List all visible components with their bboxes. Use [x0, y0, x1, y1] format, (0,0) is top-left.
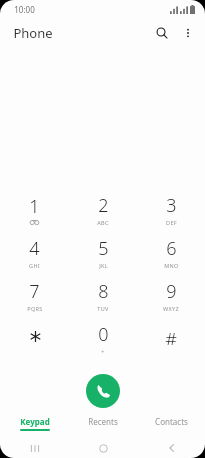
button[interactable]: Contacts	[137, 408, 205, 438]
staticText: 5	[98, 236, 109, 261]
staticText: 10:00	[14, 4, 35, 15]
staticText: Recents	[88, 416, 118, 427]
staticText: 0	[98, 322, 109, 347]
staticText: Phone	[13, 24, 53, 42]
staticText: PQRS	[27, 305, 43, 312]
button[interactable]: Search	[149, 20, 175, 46]
staticText: 6	[166, 236, 177, 261]
button[interactable]: 0	[69, 317, 137, 360]
button[interactable]: 1	[0, 188, 69, 231]
staticText: GHI	[29, 262, 40, 269]
button[interactable]: Keypad	[0, 408, 69, 438]
staticText: 7	[29, 279, 40, 304]
staticText: Contacts	[155, 416, 188, 427]
staticText: 9	[166, 279, 177, 304]
staticText: #	[165, 327, 177, 345]
button[interactable]: 3	[137, 188, 205, 231]
button[interactable]: 4	[0, 231, 69, 274]
staticText: WXYZ	[163, 305, 179, 312]
button[interactable]: 6	[137, 231, 205, 274]
staticText: JKL	[99, 262, 108, 269]
staticText: DEF	[166, 219, 177, 226]
staticText: 8	[98, 279, 109, 304]
staticText: Keypad	[20, 416, 50, 427]
button[interactable]: 5	[69, 231, 137, 274]
button[interactable]: Recent apps	[0, 438, 69, 458]
button[interactable]: More options	[175, 20, 201, 46]
staticText: 3	[166, 193, 177, 218]
staticText: 2	[98, 193, 109, 218]
staticText: +	[101, 348, 105, 355]
button[interactable]: #	[137, 317, 205, 360]
button[interactable]: 9	[137, 274, 205, 317]
staticText: 1	[29, 194, 40, 219]
button[interactable]: Home	[69, 438, 137, 458]
button[interactable]: 2	[69, 188, 137, 231]
button[interactable]: 8	[69, 274, 137, 317]
staticText: ABC	[97, 219, 109, 226]
button[interactable]	[0, 317, 69, 360]
staticText: MNO	[164, 262, 179, 269]
staticText: 4	[29, 236, 40, 261]
button[interactable]: Call	[86, 374, 120, 408]
staticText: TUV	[97, 305, 109, 312]
button[interactable]: 7	[0, 274, 69, 317]
button[interactable]: Recents	[69, 408, 137, 438]
button[interactable]: Back	[137, 438, 205, 458]
